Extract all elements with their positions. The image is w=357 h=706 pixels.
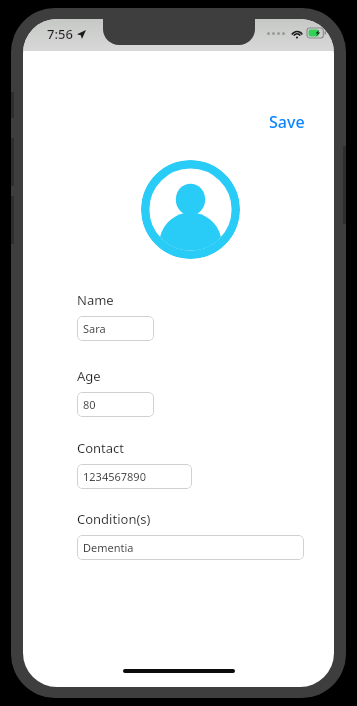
staticText: Save <box>269 111 305 133</box>
staticText: Sara <box>83 321 106 336</box>
button[interactable]: Save <box>263 107 311 137</box>
staticText: Name <box>77 291 114 309</box>
button[interactable]: Sara <box>77 316 154 341</box>
button[interactable]: Profile photo <box>141 160 240 259</box>
staticText: Condition(s) <box>77 510 151 528</box>
staticText: 80 <box>83 397 96 412</box>
staticText: 1234567890 <box>83 469 146 484</box>
button[interactable]: Dementia <box>77 535 304 560</box>
staticText: Contact <box>77 439 125 457</box>
button[interactable]: 80 <box>77 392 154 417</box>
staticText: Age <box>77 367 101 385</box>
staticText: Dementia <box>83 540 134 555</box>
staticText: 7:56 <box>47 25 73 43</box>
button[interactable]: 1234567890 <box>77 464 192 489</box>
